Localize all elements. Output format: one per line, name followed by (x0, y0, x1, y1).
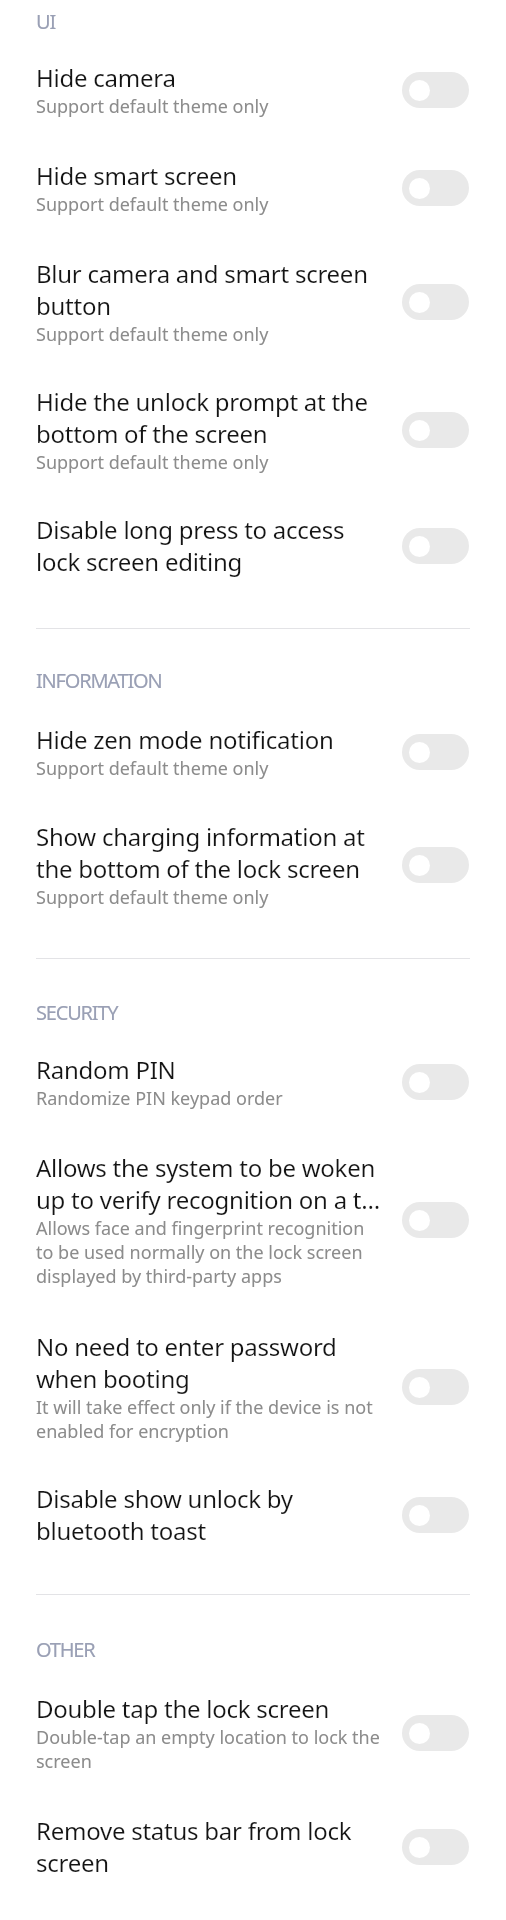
button[interactable] (402, 1202, 469, 1238)
button[interactable]: Hide camera (0, 61, 506, 119)
button[interactable] (402, 528, 469, 564)
button[interactable] (402, 1497, 469, 1533)
staticText: Double-tap an empty location to lock the… (36, 1725, 380, 1773)
button[interactable]: Allows the system to be woken up to veri… (0, 1151, 506, 1288)
button[interactable] (402, 1715, 469, 1751)
staticText: Blur camera and smart screen button (36, 257, 368, 322)
button[interactable]: Disable show unlock by bluetooth toast (0, 1482, 506, 1547)
button[interactable]: No need to enter password when booting (0, 1330, 506, 1443)
staticText: UI (36, 8, 55, 35)
button[interactable] (402, 1064, 469, 1100)
button[interactable] (402, 72, 469, 108)
button[interactable] (402, 847, 469, 883)
button[interactable]: Hide smart screen (0, 159, 506, 217)
staticText: Double tap the lock screen (36, 1692, 330, 1725)
staticText: Support default theme only (36, 322, 269, 347)
staticText: Disable long press to access lock screen… (36, 513, 345, 578)
staticText: It will take effect only if the device i… (36, 1395, 373, 1443)
button[interactable]: Blur camera and smart screen button (0, 257, 506, 347)
button[interactable] (402, 734, 469, 770)
staticText: INFORMATION (36, 667, 162, 694)
button[interactable]: Remove status bar from lock screen (0, 1814, 506, 1879)
staticText: Allows the system to be woken up to veri… (36, 1151, 381, 1216)
staticText: Show charging information at the bottom … (36, 820, 365, 885)
button[interactable] (402, 284, 469, 320)
staticText: Hide the unlock prompt at the bottom of … (36, 385, 368, 450)
staticText: Hide camera (36, 61, 176, 94)
staticText: Hide zen mode notification (36, 723, 334, 756)
staticText: Allows face and fingerprint recognition … (36, 1216, 365, 1288)
staticText: Random PIN (36, 1053, 176, 1086)
staticText: Disable show unlock by bluetooth toast (36, 1482, 293, 1547)
staticText: Support default theme only (36, 885, 269, 910)
staticText: Hide smart screen (36, 159, 237, 192)
button[interactable] (402, 412, 469, 448)
button[interactable]: Hide zen mode notification (0, 723, 506, 781)
button[interactable] (402, 1829, 469, 1865)
staticText: Support default theme only (36, 756, 269, 781)
staticText: Remove status bar from lock screen (36, 1814, 352, 1879)
button[interactable]: Hide the unlock prompt at the bottom of … (0, 385, 506, 475)
staticText: SECURITY (36, 999, 118, 1026)
staticText: No need to enter password when booting (36, 1330, 337, 1395)
staticText: Randomize PIN keypad order (36, 1086, 283, 1111)
staticText: Support default theme only (36, 94, 269, 119)
button[interactable]: Disable long press to access lock screen… (0, 513, 506, 578)
button[interactable]: Double tap the lock screen (0, 1692, 506, 1773)
staticText: Support default theme only (36, 192, 269, 217)
button[interactable] (402, 170, 469, 206)
button[interactable]: Show charging information at the bottom … (0, 820, 506, 910)
button[interactable]: Random PIN (0, 1053, 506, 1111)
button[interactable] (402, 1369, 469, 1405)
staticText: Support default theme only (36, 450, 269, 475)
staticText: OTHER (36, 1636, 95, 1663)
